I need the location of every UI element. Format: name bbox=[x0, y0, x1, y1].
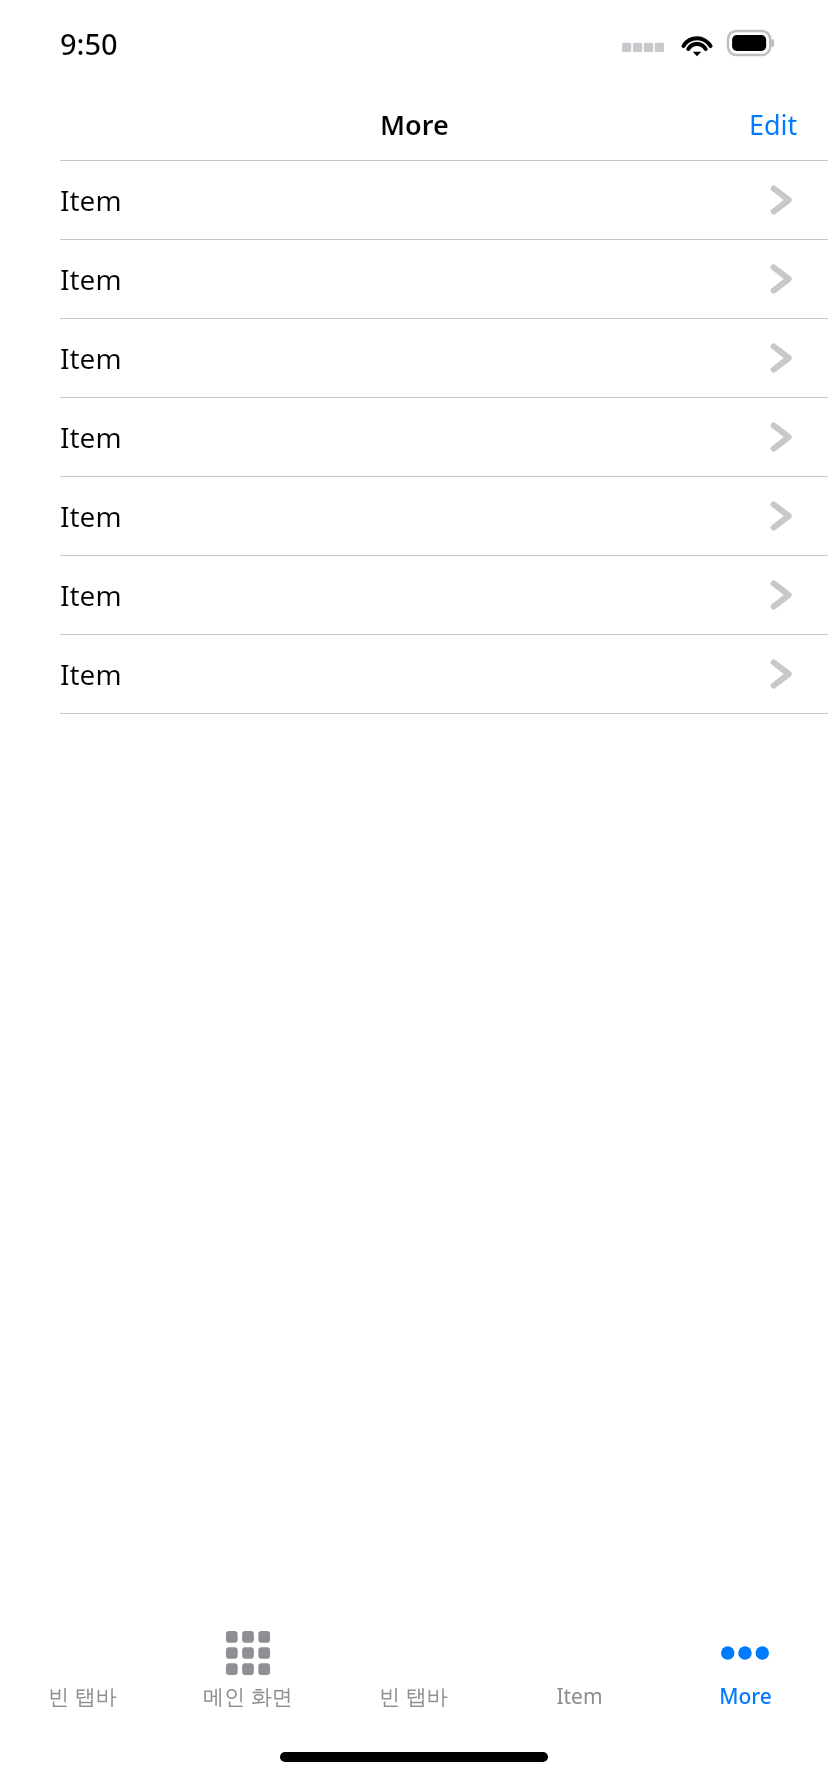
button[interactable]: Item bbox=[0, 477, 828, 555]
staticText: 빈 탭바 bbox=[379, 1682, 448, 1711]
staticText: 메인 화면 bbox=[203, 1682, 293, 1711]
staticText: Item bbox=[60, 655, 770, 693]
staticText: Item bbox=[60, 418, 770, 456]
button[interactable]: Item bbox=[0, 319, 828, 397]
other: 메인 화면 bbox=[226, 1631, 270, 1675]
button[interactable]: 빈 탭바 bbox=[330, 1624, 496, 1734]
staticText: More bbox=[380, 106, 449, 143]
staticText: Edit bbox=[749, 106, 798, 143]
staticText: Item bbox=[60, 497, 770, 535]
staticText: Item bbox=[556, 1682, 603, 1711]
staticText: Item bbox=[60, 576, 770, 614]
button[interactable]: Edit bbox=[719, 92, 828, 157]
staticText: Item bbox=[60, 339, 770, 377]
button[interactable]: Item bbox=[0, 240, 828, 318]
button[interactable]: Item bbox=[0, 635, 828, 713]
button[interactable]: Item bbox=[0, 556, 828, 634]
staticText: 빈 탭바 bbox=[48, 1682, 117, 1711]
button[interactable]: 메인 화면 bbox=[165, 1624, 330, 1734]
button[interactable]: Item bbox=[0, 398, 828, 476]
button[interactable]: 빈 탭바 bbox=[0, 1624, 165, 1734]
staticText: Item bbox=[60, 181, 770, 219]
staticText: Item bbox=[60, 260, 770, 298]
other: More bbox=[721, 1645, 769, 1661]
staticText: 9:50 bbox=[60, 24, 118, 63]
button[interactable]: Item bbox=[496, 1624, 662, 1734]
button[interactable]: More bbox=[662, 1624, 828, 1734]
staticText: More bbox=[719, 1682, 772, 1711]
button[interactable]: Item bbox=[0, 161, 828, 239]
